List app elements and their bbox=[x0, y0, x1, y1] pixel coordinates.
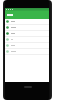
button[interactable] bbox=[5, 37, 49, 42]
button[interactable] bbox=[5, 25, 49, 30]
button[interactable] bbox=[5, 31, 49, 36]
button[interactable] bbox=[5, 19, 49, 24]
button[interactable] bbox=[5, 43, 49, 48]
button[interactable] bbox=[5, 49, 49, 54]
